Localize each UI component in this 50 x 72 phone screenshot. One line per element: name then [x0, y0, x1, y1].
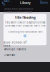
staticText: This short line of description text — [4, 21, 45, 24]
staticText: McVeigh Candle — [3, 48, 26, 51]
button[interactable]: Lisa Park — [0, 52, 50, 58]
staticText: continues onto a second short line — [5, 24, 45, 27]
staticText: Back — [4, 0, 11, 6]
staticText: Blue School of Idea — [3, 41, 26, 47]
button[interactable]: McVeigh Candle — [0, 47, 50, 52]
button[interactable]: Action — [24, 34, 26, 37]
button[interactable]: Blue School of Idea — [0, 41, 50, 47]
staticText: Title Heading — [14, 16, 35, 20]
button[interactable]: Back — [1, 0, 12, 5]
staticText: Lisa Park — [3, 53, 14, 57]
button[interactable]: Done — [39, 0, 49, 5]
staticText: Library — [20, 1, 31, 5]
staticText: Something else noted below here — [8, 30, 42, 33]
staticText: Done — [40, 1, 48, 4]
staticText: UPDATED RECENTLY DOWNLOADED ITEMS — [3, 7, 33, 13]
